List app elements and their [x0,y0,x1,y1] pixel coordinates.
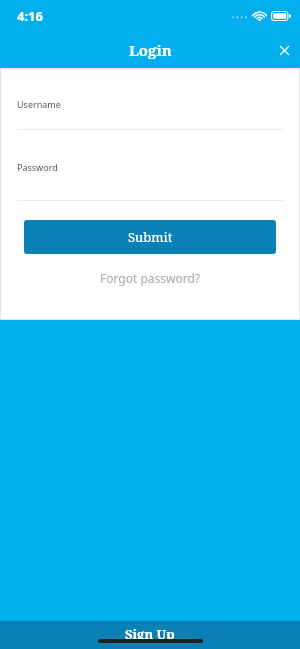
staticText: Submit [128,228,173,246]
staticText: Password [17,161,58,173]
button[interactable]: Password [0,130,300,200]
staticText: Login [129,40,172,60]
staticText: Forgot password? [100,270,201,286]
button[interactable]: Forgot password? [0,267,300,289]
staticText: 4:16 [17,7,43,25]
staticText: Username [17,98,61,110]
button[interactable]: Username [0,68,300,129]
button[interactable]: Close [271,37,297,63]
button[interactable]: Sign Up [0,621,300,649]
button[interactable]: Submit [24,220,276,254]
staticText: Sign Up [125,625,175,643]
